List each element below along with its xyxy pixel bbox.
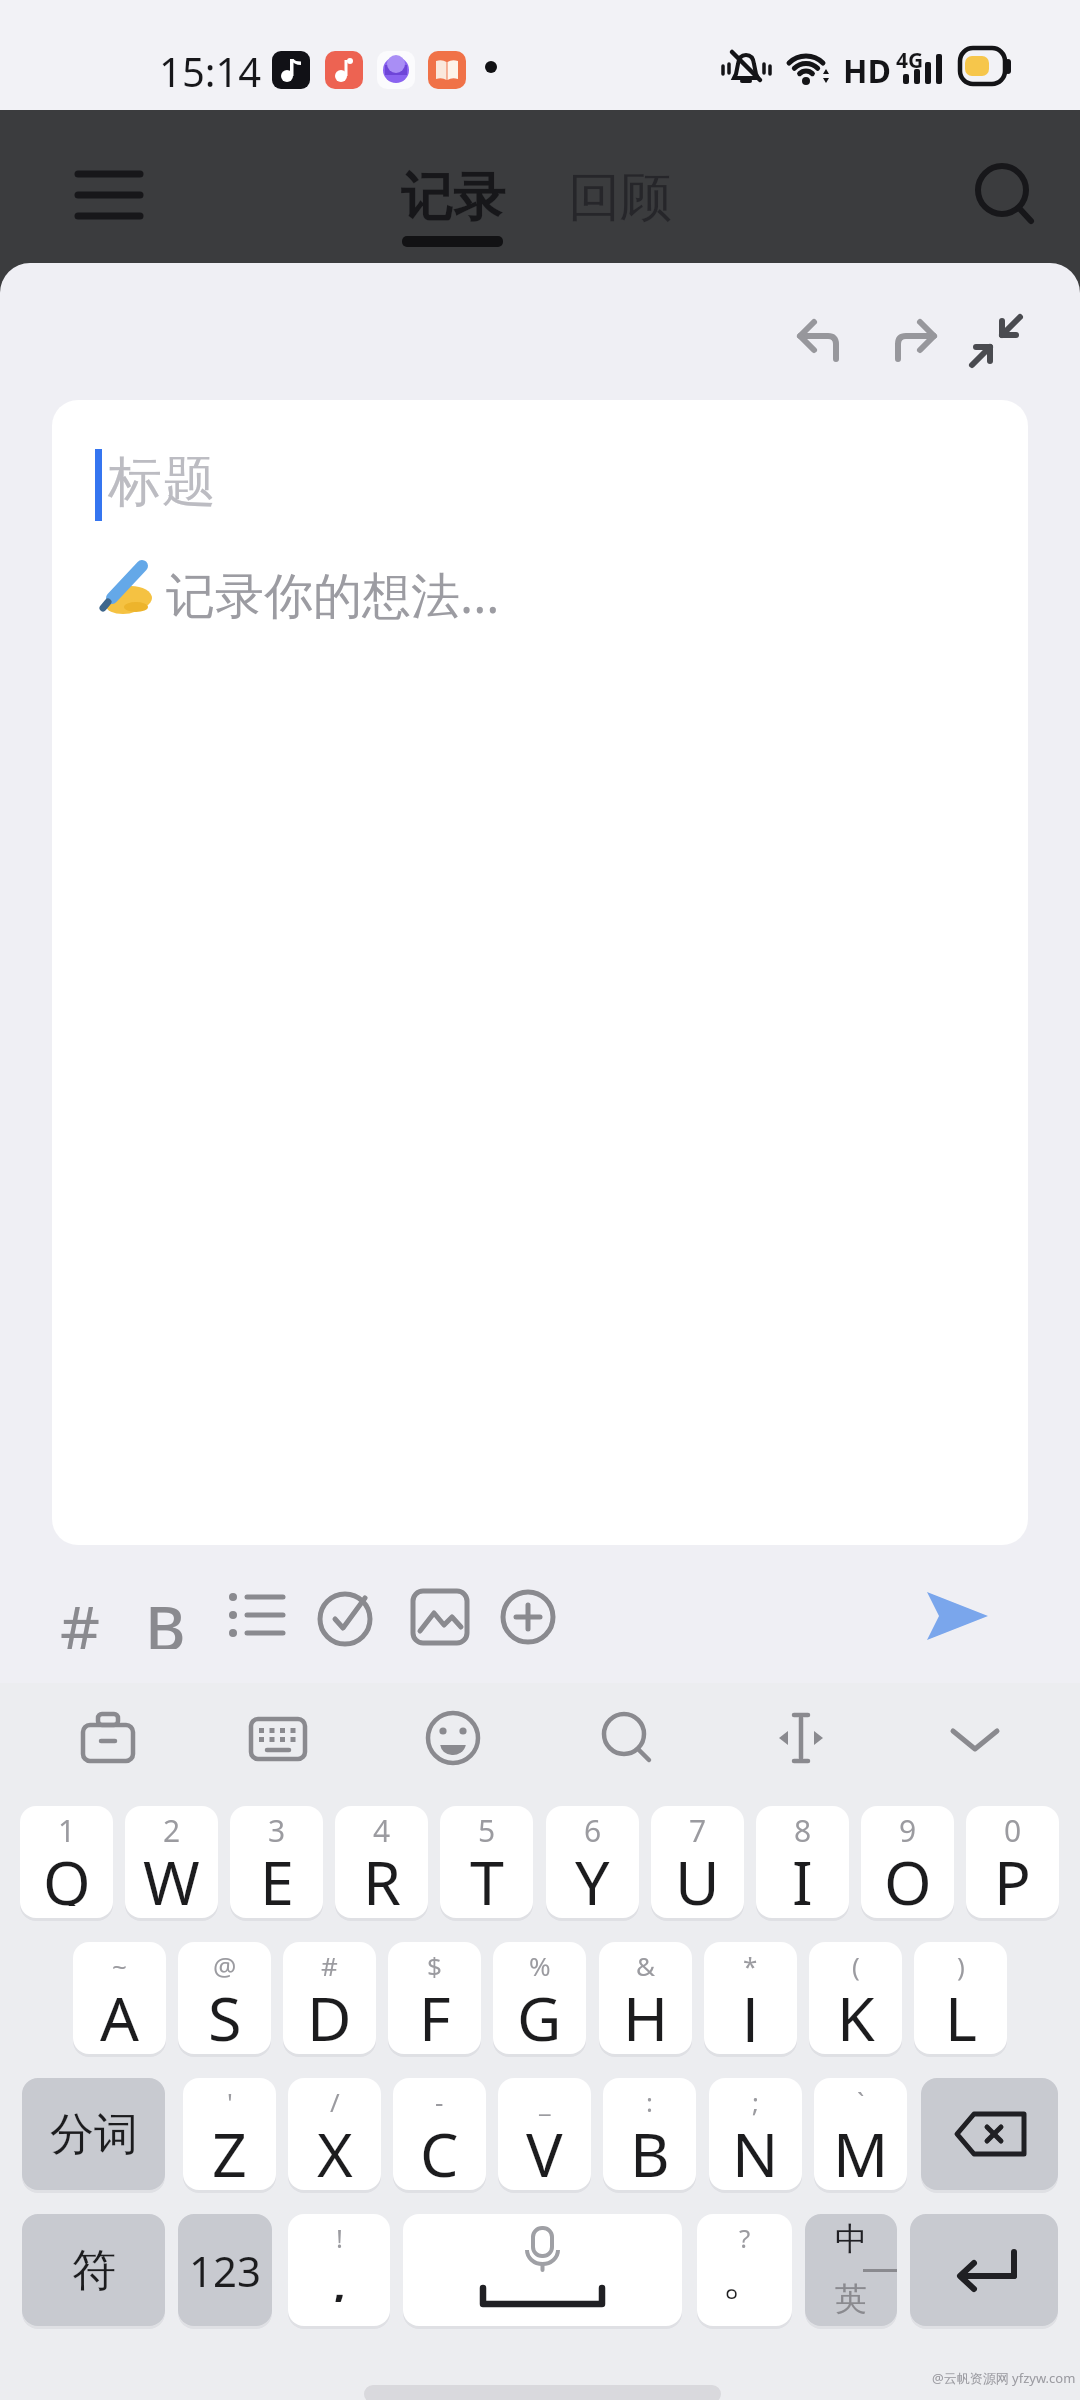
staticText: ( bbox=[852, 1948, 860, 1983]
staticText: 9 bbox=[899, 1810, 917, 1848]
button[interactable]: 符 bbox=[22, 2214, 165, 2326]
staticText: C bbox=[420, 2112, 459, 2178]
button[interactable]: ( bbox=[809, 1942, 902, 2054]
staticText: & bbox=[636, 1948, 656, 1983]
staticText: 1 bbox=[58, 1810, 76, 1848]
staticText: , bbox=[331, 2236, 348, 2302]
staticText: ? bbox=[739, 2220, 751, 2254]
button[interactable] bbox=[886, 313, 938, 365]
button[interactable]: 6 bbox=[546, 1806, 639, 1918]
button[interactable]: ! bbox=[288, 2214, 390, 2326]
button[interactable]: _ bbox=[498, 2078, 591, 2190]
staticText: J bbox=[742, 1976, 759, 2042]
button[interactable]: * bbox=[704, 1942, 797, 2054]
button[interactable]: 分词 bbox=[22, 2078, 165, 2190]
staticText: B bbox=[630, 2112, 670, 2178]
button[interactable]: : bbox=[603, 2078, 696, 2190]
button[interactable]: & bbox=[599, 1942, 692, 2054]
button[interactable] bbox=[316, 1585, 380, 1649]
button[interactable] bbox=[946, 1709, 1004, 1767]
staticText: HD bbox=[843, 49, 891, 93]
button[interactable] bbox=[922, 1589, 996, 1647]
staticText: 4 bbox=[373, 1810, 391, 1848]
staticText: ' bbox=[227, 2084, 233, 2119]
staticText: ~ bbox=[112, 1948, 127, 1983]
staticText: @ bbox=[213, 1948, 237, 1983]
staticText: # bbox=[321, 1948, 338, 1983]
staticText: R bbox=[363, 1840, 401, 1906]
staticText: 分词 bbox=[50, 2107, 138, 2162]
button[interactable]: ' bbox=[183, 2078, 276, 2190]
button[interactable]: ; bbox=[709, 2078, 802, 2190]
button[interactable] bbox=[249, 1709, 307, 1767]
staticText: # bbox=[60, 1585, 101, 1649]
button[interactable]: 2 bbox=[125, 1806, 218, 1918]
button[interactable] bbox=[598, 1709, 656, 1767]
button[interactable] bbox=[910, 2214, 1058, 2326]
button[interactable]: % bbox=[493, 1942, 586, 2054]
staticText: H bbox=[623, 1976, 669, 2042]
button[interactable] bbox=[921, 2078, 1058, 2190]
staticText: * bbox=[743, 1948, 758, 1983]
staticText: 英 bbox=[835, 2279, 867, 2319]
button[interactable] bbox=[403, 2214, 682, 2326]
button[interactable]: 8 bbox=[756, 1806, 849, 1918]
staticText: 15:14 bbox=[159, 44, 262, 98]
staticText: 回顾 bbox=[568, 165, 672, 231]
button[interactable]: 123 bbox=[178, 2214, 272, 2326]
button[interactable] bbox=[79, 1709, 137, 1767]
staticText: Q bbox=[43, 1840, 91, 1906]
button[interactable]: 回顾 bbox=[555, 150, 685, 245]
staticText: ` bbox=[857, 2084, 865, 2119]
staticText: @云帆资源网 yfzyw.com bbox=[932, 2369, 1076, 2387]
button[interactable] bbox=[225, 1585, 289, 1649]
button[interactable]: - bbox=[393, 2078, 486, 2190]
button[interactable] bbox=[770, 1709, 832, 1767]
button[interactable]: / bbox=[288, 2078, 381, 2190]
button[interactable]: @ bbox=[178, 1942, 271, 2054]
staticText: % bbox=[529, 1948, 551, 1983]
button[interactable]: ) bbox=[914, 1942, 1007, 2054]
button[interactable] bbox=[496, 1585, 560, 1649]
button[interactable]: ? bbox=[697, 2214, 792, 2326]
staticText: S bbox=[208, 1976, 242, 2042]
button[interactable] bbox=[60, 160, 156, 224]
staticText: P bbox=[994, 1840, 1031, 1906]
button[interactable]: ` bbox=[814, 2078, 907, 2190]
staticText: I bbox=[792, 1840, 813, 1906]
staticText: B bbox=[145, 1585, 186, 1649]
staticText: 0 bbox=[1004, 1810, 1022, 1848]
button[interactable]: $ bbox=[388, 1942, 481, 2054]
staticText: 符 bbox=[72, 2243, 116, 2298]
staticText: 4G bbox=[896, 46, 924, 75]
button[interactable]: 4 bbox=[335, 1806, 428, 1918]
button[interactable]: ~ bbox=[73, 1942, 166, 2054]
button[interactable] bbox=[408, 1585, 472, 1649]
staticText: 7 bbox=[689, 1810, 707, 1848]
staticText: 标题 bbox=[108, 448, 216, 516]
staticText: F bbox=[419, 1976, 451, 2042]
button[interactable] bbox=[968, 313, 1028, 373]
button[interactable]: # bbox=[48, 1585, 112, 1649]
button[interactable]: 标题 bbox=[52, 400, 1028, 1545]
button[interactable]: 3 bbox=[230, 1806, 323, 1918]
button[interactable]: 记录 bbox=[390, 150, 515, 245]
button[interactable] bbox=[796, 313, 848, 365]
button[interactable]: 1 bbox=[20, 1806, 113, 1918]
staticText: - bbox=[435, 2084, 444, 2119]
staticText: K bbox=[837, 1976, 875, 2042]
button[interactable]: 7 bbox=[651, 1806, 744, 1918]
button[interactable] bbox=[960, 150, 1050, 240]
staticText: 记录你的想法... bbox=[166, 561, 500, 628]
button[interactable]: # bbox=[283, 1942, 376, 2054]
staticText: ) bbox=[957, 1948, 965, 1983]
button[interactable]: 中 bbox=[805, 2214, 897, 2326]
staticText: 6 bbox=[584, 1810, 602, 1848]
button[interactable]: 0 bbox=[966, 1806, 1059, 1918]
button[interactable] bbox=[424, 1709, 482, 1767]
button[interactable]: B bbox=[133, 1585, 197, 1649]
staticText: 5 bbox=[478, 1810, 496, 1848]
button[interactable]: 9 bbox=[861, 1806, 954, 1918]
button[interactable]: 5 bbox=[440, 1806, 533, 1918]
staticText: 123 bbox=[189, 2242, 262, 2299]
